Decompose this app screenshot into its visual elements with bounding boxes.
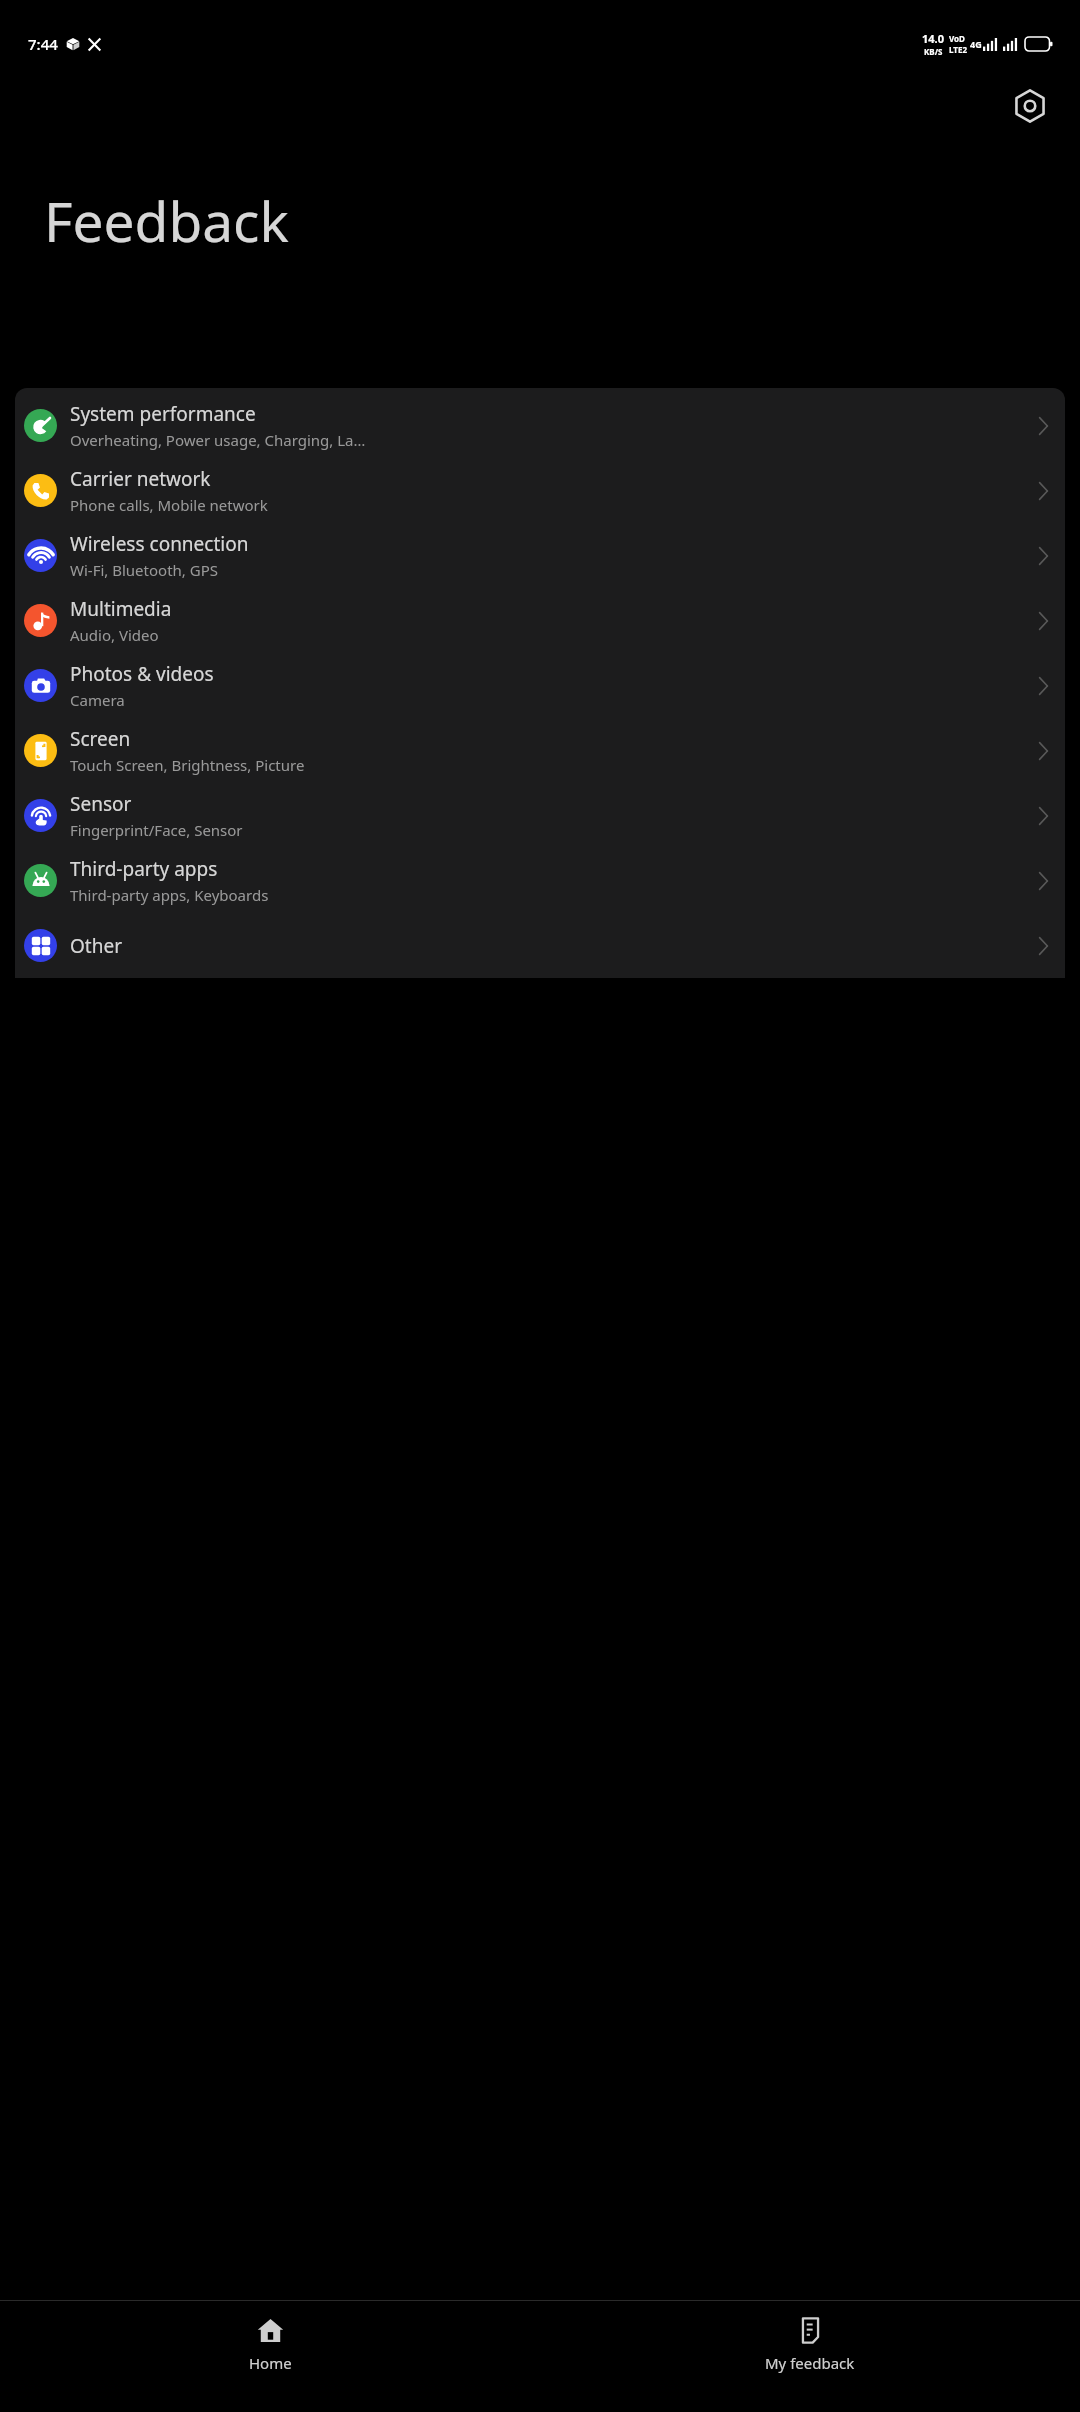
button[interactable]: My feedback [540,2301,1080,2412]
staticText: KB/S [924,46,943,57]
button[interactable]: Settings [1002,78,1058,134]
staticText: Wireless connection [70,531,249,557]
staticText: Camera [70,690,125,710]
staticText: Third-party apps [70,856,218,882]
staticText: Touch Screen, Brightness, Picture [70,755,305,775]
button[interactable]: Carrier network [15,458,1065,523]
staticText: Sensor [70,791,132,817]
button[interactable]: Wireless connection [15,523,1065,588]
staticText: Multimedia [70,596,172,622]
staticText: Phone calls, Mobile network [70,495,268,515]
staticText: Fingerprint/Face, Sensor [70,820,243,840]
staticText: 7:44 [28,34,58,54]
staticText: System performance [70,401,256,427]
staticText: Other [70,933,123,959]
staticText: VoD [949,33,965,44]
staticText: Home [249,2353,292,2373]
staticText: Carrier network [70,466,211,492]
staticText: My feedback [765,2353,855,2373]
staticText: Overheating, Power usage, Charging, La… [70,430,366,450]
staticText: Screen [70,726,131,752]
button[interactable]: Home [0,2301,540,2412]
button[interactable]: Other [15,913,1065,978]
button[interactable]: System performance [15,393,1065,458]
staticText: LTE2 [949,44,967,55]
staticText: 4G [970,38,982,50]
staticText: Audio, Video [70,625,159,645]
staticText: Feedback [44,183,289,258]
staticText: 14.0 [922,31,944,46]
button[interactable]: Third-party apps [15,848,1065,913]
staticText: Third-party apps, Keyboards [70,885,269,905]
button[interactable]: Multimedia [15,588,1065,653]
button[interactable]: Screen [15,718,1065,783]
button[interactable]: Sensor [15,783,1065,848]
staticText: Wi-Fi, Bluetooth, GPS [70,560,218,580]
button[interactable]: Photos & videos [15,653,1065,718]
staticText: Photos & videos [70,661,214,687]
